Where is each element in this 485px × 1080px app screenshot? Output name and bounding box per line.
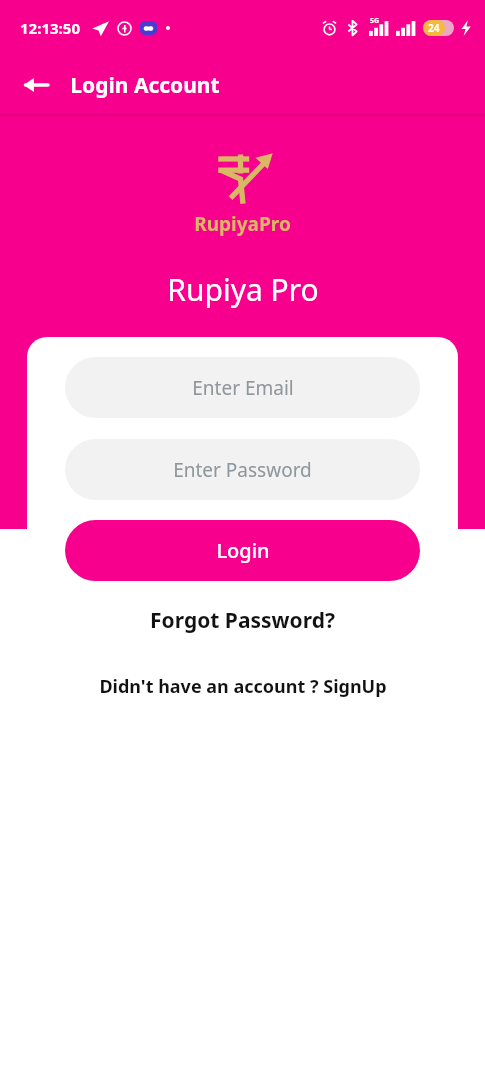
staticText: Login Account [70,71,220,100]
staticText: Enter Password [173,457,312,483]
staticText: Rupiya Pro [167,269,319,310]
staticText: RupiyaPro [194,211,291,237]
button[interactable]: Forgot Password? [65,600,420,640]
staticText: 12:13:50 [20,18,80,38]
button[interactable]: Didn't have an account ? SignUp [0,668,485,704]
button[interactable]: Back [12,61,60,109]
staticText: 24 [428,21,440,35]
button[interactable]: Enter Password [65,439,420,500]
staticText: Forgot Password? [150,606,335,635]
button[interactable]: Login [65,520,420,581]
staticText: 5G [370,16,380,26]
button[interactable]: Enter Email [65,357,420,418]
staticText: Enter Email [192,375,294,401]
staticText: Didn't have an account ? SignUp [99,674,387,699]
staticText: Login [216,537,270,564]
